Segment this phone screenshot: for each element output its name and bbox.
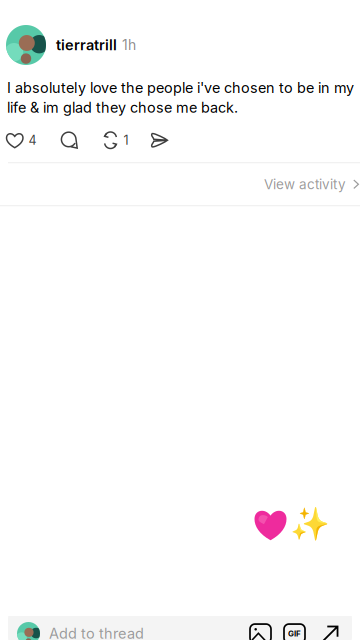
button[interactable]: View activity (0, 163, 360, 205)
staticText: ✨ (290, 505, 330, 542)
button[interactable]: 4 (0, 128, 44, 152)
staticText: Add to thread (49, 625, 144, 640)
staticText: I absolutely love the people i've chosen… (7, 79, 354, 116)
staticText: tierratrill (56, 36, 117, 54)
button[interactable]: 1 (94, 128, 136, 152)
staticText: 1 (123, 133, 128, 148)
staticText: View activity (264, 176, 346, 192)
staticText: GIF (288, 629, 301, 638)
button[interactable]: Add GIF (276, 623, 313, 640)
button[interactable]: Send (313, 624, 340, 640)
staticText: 1h (122, 36, 136, 53)
button[interactable]: Add photo (245, 623, 276, 640)
button[interactable]: Reply (44, 128, 94, 152)
button[interactable]: Share (136, 128, 183, 152)
staticText: 4 (28, 133, 36, 148)
